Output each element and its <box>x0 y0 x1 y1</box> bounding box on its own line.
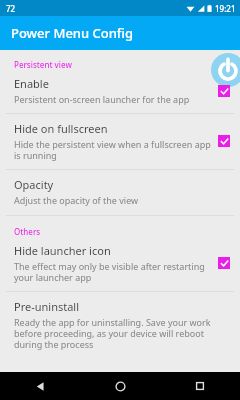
button[interactable]: Home <box>80 372 160 400</box>
button[interactable]: Recent apps <box>160 372 240 400</box>
staticText: Power Menu Config <box>11 24 134 42</box>
button[interactable]: Back <box>0 372 80 400</box>
staticText: Opacity <box>14 177 54 192</box>
staticText: Persistent view <box>14 59 72 70</box>
button[interactable]: Hide on fullscreen <box>0 114 240 169</box>
staticText: Hide launcher icon <box>14 243 111 258</box>
staticText: The effect may only be visible after res… <box>14 260 212 283</box>
button[interactable]: Pre-uninstall <box>0 292 240 358</box>
staticText: Pre-uninstall <box>14 299 80 314</box>
staticText: Hide the persistent view when a fullscre… <box>14 138 212 161</box>
staticText: Ready the app for uninstalling. Save you… <box>14 316 230 350</box>
staticText: Enable <box>14 76 49 91</box>
button[interactable]: Hide launcher icon <box>0 241 240 291</box>
staticText: 19:21 <box>215 3 236 14</box>
button[interactable]: Opacity <box>0 170 240 215</box>
staticText: Persistent on-screen launcher for the ap… <box>14 93 190 105</box>
button[interactable]: Enable <box>0 74 240 113</box>
staticText: Hide on fullscreen <box>14 121 108 136</box>
staticText: Others <box>14 226 41 237</box>
staticText: 72 <box>6 3 16 14</box>
staticText: Adjust the opacity of the view <box>14 194 139 206</box>
